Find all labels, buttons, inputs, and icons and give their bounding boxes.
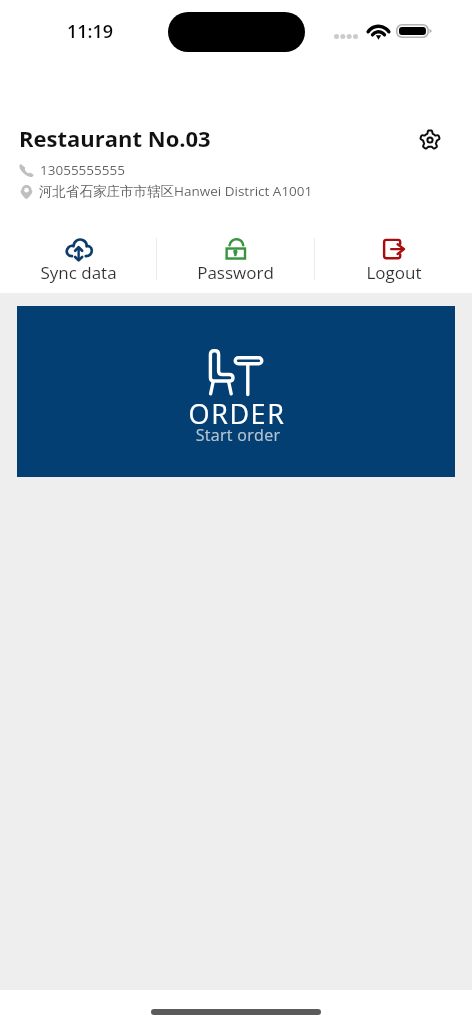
button[interactable]: Settings	[414, 124, 446, 156]
staticText: Logout	[366, 261, 422, 284]
staticText: Start order	[19, 424, 457, 446]
staticText: 11:19	[67, 19, 114, 44]
button[interactable]: Password	[157, 238, 314, 284]
button[interactable]: ORDER	[17, 306, 455, 477]
staticText: 13055555555	[40, 161, 125, 179]
button[interactable]: Logout	[315, 238, 472, 284]
staticText: Sync data	[40, 261, 117, 284]
staticText: ORDER	[18, 395, 456, 432]
staticText: Password	[197, 261, 274, 284]
button[interactable]: Sync data	[0, 238, 156, 284]
staticText: Restaurant No.03	[19, 123, 211, 153]
staticText: 河北省石家庄市市辖区Hanwei District A1001	[39, 182, 313, 200]
